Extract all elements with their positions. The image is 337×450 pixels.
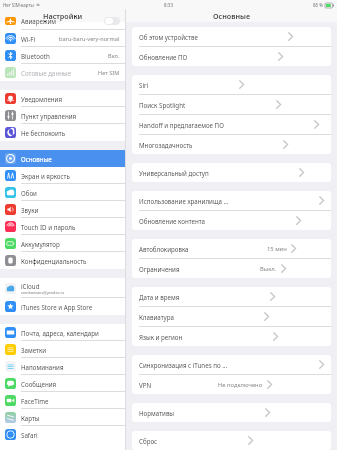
staticText: Bluetooth [21,52,50,60]
staticText: Об этом устройстве [139,33,198,41]
staticText: Сброс [139,437,158,445]
staticText: Многозадачность [139,141,193,149]
button[interactable]: Нормативы [132,403,331,422]
staticText: Дата и время [139,293,180,301]
button[interactable]: Синхронизация с iTunes по Wi-Fi [132,355,331,374]
staticText: Конфиденциальность [21,257,87,265]
button[interactable]: Bluetooth [0,47,125,64]
button[interactable]: iCloud [0,278,125,298]
button[interactable]: Дата и время [132,287,331,306]
button[interactable]: Аккумулятор [0,235,125,252]
button[interactable]: Заметки [0,341,125,358]
staticText: Заметки [21,346,47,354]
button[interactable]: Поиск Spotlight [132,95,331,114]
button[interactable]: Обновление контента [132,211,331,230]
button[interactable]: Siri [132,75,331,94]
staticText: Нет SIM-карты [3,2,34,8]
button[interactable]: Клавиатура [132,307,331,326]
button[interactable]: Использование хранилища и iCloud [132,191,331,210]
staticText: Ограничения [139,265,180,273]
button[interactable]: Конфиденциальность [0,252,125,269]
button[interactable]: Напоминания [0,358,125,375]
staticText: Touch ID и пароль [21,223,76,231]
staticText: Сообщения [21,380,57,388]
staticText: FaceTime [21,397,49,405]
staticText: Использование хранилища и iCloud [139,197,229,205]
button[interactable]: VPN [132,375,331,394]
staticText: Обновление ПО [139,53,188,61]
staticText: Wi-Fi [21,35,36,43]
button[interactable]: Сотовые данные [0,64,125,81]
button[interactable]: Сообщения [0,375,125,392]
staticText: Экран и яркость [21,172,70,180]
button[interactable]: Не беспокоить [0,124,125,141]
staticText: Основные [21,155,52,163]
button[interactable]: Ограничения [132,259,331,278]
staticText: Настройки [43,11,83,21]
staticText: VPN [139,381,152,389]
button[interactable]: Wi-Fi [0,30,125,47]
button[interactable]: Обои [0,184,125,201]
staticText: Поиск Spotlight [139,101,186,109]
staticText: Сотовые данные [21,69,72,77]
staticText: 8:33 [164,2,174,8]
staticText: iCloud [21,282,40,290]
button[interactable]: FaceTime [0,392,125,409]
staticText: Аккумулятор [21,240,60,248]
button[interactable]: Почта, адреса, календари [0,324,125,341]
staticText: Siri [139,81,149,89]
button[interactable]: Обновление ПО [132,47,331,66]
button[interactable]: Safari [0,426,125,443]
staticText: Не подключено [218,381,263,389]
button[interactable]: Универсальный доступ [132,163,331,182]
button[interactable]: Многозадачность [132,135,331,154]
staticText: Синхронизация с iTunes по Wi-Fi [139,361,229,369]
button[interactable]: Язык и регион [132,327,331,346]
staticText: baru-baru-very-normal [59,35,120,43]
button[interactable]: Сброс [132,431,331,450]
staticText: Обои [21,189,37,197]
staticText: Обновление контента [139,217,206,225]
staticText: Карты [21,414,40,422]
button[interactable]: iTunes Store и App Store [0,298,125,315]
staticText: Уведомления [21,95,63,103]
staticText: Не беспокоить [21,129,66,137]
button[interactable]: Карты [0,409,125,426]
staticText: Универсальный доступ [139,169,209,177]
staticText: Пункт управления [21,112,77,120]
button[interactable]: Автоблокировка [132,239,331,258]
staticText: 86 % [313,2,323,8]
staticText: 15 мин [267,245,287,253]
button[interactable]: Touch ID и пароль [0,218,125,235]
staticText: Safari [21,431,38,439]
staticText: iTunes Store и App Store [21,303,93,311]
button[interactable]: Об этом устройстве [132,27,331,46]
staticText: sambaevans@yandex.ru [21,290,65,295]
staticText: Нет SIM [98,69,120,77]
staticText: Handoff и предлагаемое ПО [139,121,224,129]
staticText: Язык и регион [139,333,183,341]
staticText: Звуки [21,206,39,214]
button[interactable]: Экран и яркость [0,167,125,184]
button[interactable]: Handoff и предлагаемое ПО [132,115,331,134]
staticText: Автоблокировка [139,245,189,253]
staticText: Почта, адреса, календари [21,329,99,337]
staticText: Клавиатура [139,313,174,321]
button[interactable]: Уведомления [0,90,125,107]
staticText: Вкл. [108,52,120,60]
button[interactable]: Пункт управления [0,107,125,124]
staticText: Основные [213,11,251,21]
button[interactable]: Основные [0,150,125,167]
staticText: Напоминания [21,363,64,371]
button[interactable]: Звуки [0,201,125,218]
staticText: Выкл. [260,265,277,273]
button[interactable]: Авиарежим [0,22,125,30]
staticText: Авиарежим [21,17,104,25]
staticText: Нормативы [139,409,175,417]
